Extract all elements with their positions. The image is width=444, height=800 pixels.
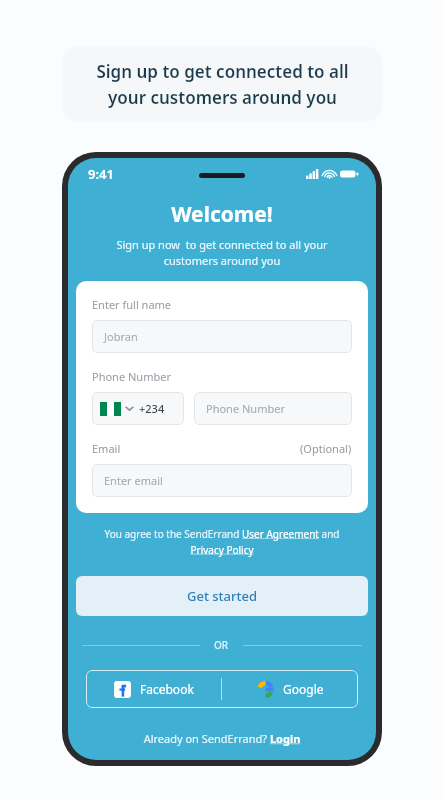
staticText: Email: [92, 441, 300, 456]
staticText: Sign up now to get connected to all your…: [82, 237, 362, 269]
staticText: Jobran: [104, 329, 138, 344]
button[interactable]: Facebook: [86, 670, 221, 708]
button[interactable]: Phone Number: [194, 392, 352, 425]
button[interactable]: Get started: [76, 576, 368, 616]
staticText: OR: [214, 638, 229, 652]
button[interactable]: Enter email: [92, 464, 352, 497]
button[interactable]: Google: [222, 670, 358, 708]
staticText: Get started: [187, 587, 258, 605]
staticText: 9:41: [88, 165, 114, 183]
staticText: Facebook: [140, 681, 194, 697]
button[interactable]: You agree to the SendErrand User Agreeme…: [88, 527, 356, 556]
staticText: (Optional): [300, 441, 352, 456]
staticText: Enter email: [104, 473, 163, 488]
staticText: Enter full name: [92, 297, 172, 312]
button[interactable]: Already on SendErrand? Login: [68, 731, 376, 746]
staticText: +234: [139, 401, 165, 416]
staticText: Phone Number: [92, 369, 171, 384]
button[interactable]: +234: [92, 392, 184, 425]
staticText: Phone Number: [206, 401, 285, 416]
staticText: Welcome!: [68, 200, 376, 229]
staticText: Google: [283, 681, 324, 697]
staticText: Sign up to get connected to all your cus…: [96, 60, 349, 109]
button[interactable]: Jobran: [92, 320, 352, 353]
